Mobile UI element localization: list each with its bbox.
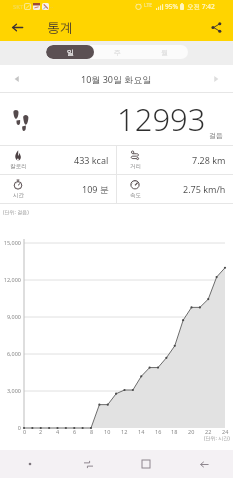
button[interactable]: Assistant [0, 450, 59, 478]
button[interactable]: 거리 [117, 146, 233, 174]
staticText: 6 [73, 428, 77, 435]
staticText: 22 [205, 428, 212, 435]
staticText: 주 [114, 48, 121, 57]
staticText: 월 [161, 48, 168, 57]
staticText: SKT [13, 3, 24, 11]
staticText: 433 kcal [74, 154, 109, 166]
staticText: 14 [138, 428, 145, 435]
button[interactable]: Back [175, 450, 233, 478]
staticText: 칼로리 [10, 163, 27, 170]
button[interactable]: 시간 [0, 175, 116, 203]
staticText: .. [50, 2, 54, 10]
button[interactable]: Share [204, 15, 228, 39]
button[interactable]: 월 [141, 45, 188, 59]
staticText: 10월 30일 화요일 [81, 73, 152, 85]
staticText: 오전 7:42 [187, 2, 215, 11]
button[interactable]: Recent apps [117, 450, 175, 478]
staticText: 0 [0, 424, 21, 431]
staticText: 18 [171, 428, 178, 435]
staticText: 통계 [47, 19, 73, 35]
staticText: 95% [165, 2, 178, 11]
button[interactable]: 속도 [117, 175, 233, 203]
staticText: (단위: 시간) [204, 435, 230, 442]
staticText: 거리 [127, 163, 144, 170]
staticText: 3,000 [0, 387, 21, 394]
staticText: 4 [56, 428, 60, 435]
staticText: LTE [144, 2, 153, 9]
button[interactable]: 일 [46, 45, 94, 59]
staticText: 2.75 km/h [183, 183, 226, 195]
button[interactable]: Back [5, 15, 29, 39]
staticText: 시간 [10, 192, 27, 199]
staticText: 20 [188, 428, 195, 435]
button[interactable]: Next day [205, 68, 227, 90]
button[interactable]: Previous day [6, 68, 28, 90]
staticText: 16 [155, 428, 162, 435]
staticText: 24 [222, 428, 229, 435]
staticText: 10 [104, 428, 111, 435]
button[interactable]: 주 [94, 45, 141, 59]
button[interactable]: 칼로리 [0, 146, 116, 174]
staticText: (단위: 걸음) [3, 209, 29, 216]
staticText: 일 [67, 48, 74, 57]
staticText: 7.28 km [192, 154, 226, 166]
staticText: 걸음 [209, 131, 223, 140]
staticText: 0 [23, 428, 27, 435]
staticText: 2 [39, 428, 43, 435]
staticText: 12993 [117, 98, 206, 140]
staticText: 8 [90, 428, 94, 435]
staticText: 속도 [127, 192, 144, 199]
staticText: 109 분 [82, 183, 109, 195]
staticText: 6,000 [0, 350, 21, 357]
staticText: 12,000 [0, 276, 21, 283]
staticText: 12 [121, 428, 128, 435]
staticText: 9,000 [0, 313, 21, 320]
button[interactable]: Switch apps [59, 450, 117, 478]
staticText: 15,000 [0, 239, 21, 246]
